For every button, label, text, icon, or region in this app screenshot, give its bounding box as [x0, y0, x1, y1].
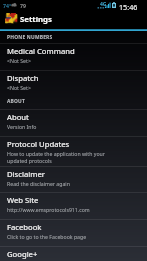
staticText: ABOUT [7, 98, 26, 105]
staticText: Settings [20, 14, 52, 25]
button[interactable]: Dispatch [0, 71, 147, 97]
button[interactable]: Medical Command [0, 44, 147, 71]
staticText: Web Site [7, 195, 39, 205]
button[interactable]: Google+ [0, 247, 147, 261]
staticText: 74° [3, 2, 12, 9]
staticText: Google+ [7, 249, 38, 259]
button[interactable]: App icon [0, 11, 147, 29]
staticText: Disclaimer [7, 169, 45, 179]
staticText: Read the disclaimer again [7, 180, 70, 187]
staticText: Facebook [7, 222, 42, 232]
other: App icon [4, 12, 18, 25]
staticText: Medical Command [7, 46, 75, 56]
staticText: 79 [20, 2, 26, 9]
staticText: 4G [100, 1, 107, 8]
staticText: <Not Set> [7, 84, 31, 91]
staticText: Dispatch [7, 73, 39, 83]
button[interactable]: Facebook [0, 220, 147, 247]
staticText: 15:46 [119, 2, 138, 12]
staticText: <Not Set> [7, 57, 31, 64]
button[interactable]: About [0, 110, 147, 137]
staticText: Click to go to the Facebook page [7, 233, 87, 240]
staticText: How to update the application with your … [7, 150, 121, 164]
staticText: http://www.emsprotocols911.com [7, 206, 90, 213]
button[interactable]: Disclaimer [0, 167, 147, 193]
button[interactable]: Protocol Updates [0, 137, 147, 167]
staticText: PHONE NUMBERS [7, 34, 53, 41]
staticText: Protocol Updates [7, 139, 70, 149]
button[interactable]: Web Site [0, 193, 147, 220]
staticText: About [7, 112, 29, 122]
staticText: Version Info [7, 123, 37, 130]
